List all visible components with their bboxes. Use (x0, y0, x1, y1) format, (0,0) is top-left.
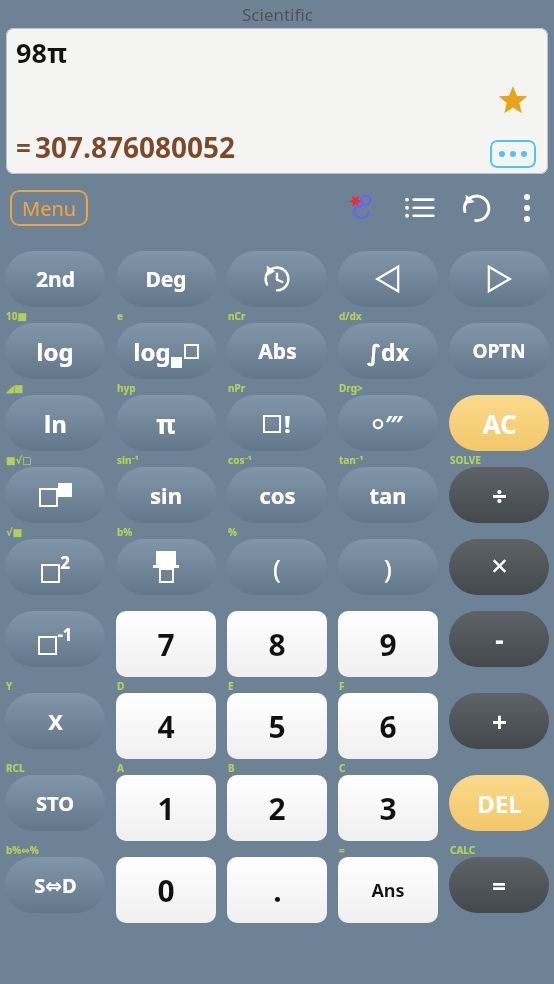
button[interactable]: Favourite (496, 84, 530, 118)
button[interactable]: STO (5, 775, 105, 831)
staticText: 307.876080052 (35, 128, 236, 166)
button[interactable]: Search constants (332, 185, 390, 231)
button[interactable]: X (5, 693, 105, 749)
button[interactable]: Minus (449, 611, 549, 667)
button[interactable]: 98π (6, 28, 548, 174)
staticText: 2nd (36, 265, 75, 294)
button[interactable]: 1 (116, 775, 216, 841)
staticText: 98π (16, 34, 67, 71)
staticText: -1 (57, 623, 73, 646)
button[interactable]: Divide (449, 467, 549, 523)
button[interactable]: 3 (338, 775, 438, 841)
button[interactable]: OPTN (449, 323, 549, 379)
staticText: - (495, 622, 504, 657)
staticText: Menu (22, 195, 77, 222)
staticText: F (339, 679, 345, 693)
button[interactable]: log (116, 323, 216, 379)
button[interactable]: ! (227, 395, 327, 451)
button[interactable]: 0 (116, 857, 216, 923)
button[interactable]: Plus (449, 693, 549, 749)
staticText: sin (150, 480, 182, 510)
staticText: hyp (117, 381, 136, 395)
staticText: . (273, 870, 282, 911)
button[interactable]: Left (338, 251, 438, 307)
button[interactable]: Fraction (116, 539, 216, 595)
staticText: Ans (371, 878, 405, 903)
staticText: Y (6, 679, 13, 693)
button[interactable]: More (506, 185, 548, 231)
button[interactable]: 5 (227, 693, 327, 759)
button[interactable]: Menu (10, 190, 88, 226)
staticText: B (228, 761, 235, 775)
staticText: D (117, 679, 125, 693)
button[interactable]: Right (449, 251, 549, 307)
button[interactable]: Abs (227, 323, 327, 379)
staticText: log (36, 335, 74, 368)
button[interactable]: 4 (116, 693, 216, 759)
staticText: + (492, 704, 507, 739)
button[interactable]: Ans (338, 857, 438, 923)
staticText: A (117, 761, 124, 775)
button[interactable]: Multiply (449, 539, 549, 595)
staticText: ! (284, 407, 291, 440)
staticText: 6 (379, 706, 397, 747)
staticText: sin⁻¹ (117, 453, 139, 467)
staticText: % (228, 525, 238, 539)
staticText: = (16, 130, 31, 165)
staticText: log (133, 335, 171, 368)
button[interactable]: -1 (5, 611, 105, 667)
button[interactable]: 8 (227, 611, 327, 677)
staticText: b%⇔% (6, 843, 39, 857)
button[interactable]: ( (227, 539, 327, 595)
button[interactable]: ‴ (338, 395, 438, 451)
staticText: ∫dx (367, 336, 409, 367)
staticText: X (48, 706, 63, 736)
button[interactable]: cos (227, 467, 327, 523)
button[interactable]: History (227, 251, 327, 307)
staticText: √■ (6, 527, 23, 539)
button[interactable]: ln (5, 395, 105, 451)
button[interactable]: History list (390, 185, 448, 231)
staticText: cos⁻¹ (228, 453, 252, 467)
staticText: Deg (145, 265, 187, 294)
staticText: ‴ (385, 407, 403, 440)
button[interactable]: tan (338, 467, 438, 523)
staticText: S⇔D (34, 872, 77, 899)
staticText: ) (384, 550, 392, 585)
button[interactable]: AC (449, 395, 549, 451)
button[interactable]: S⇔D (5, 857, 105, 913)
staticText: 1 (157, 788, 175, 829)
staticText: C (339, 761, 346, 775)
staticText: Drg> (339, 381, 363, 395)
staticText: E (228, 679, 234, 693)
button[interactable]: 2 (5, 539, 105, 595)
button[interactable]: π (116, 395, 216, 451)
staticText: CALC (450, 843, 476, 857)
button[interactable]: Deg (116, 251, 216, 307)
button[interactable]: sin (116, 467, 216, 523)
staticText: ■√□ (6, 455, 32, 467)
button[interactable]: Undo (448, 185, 506, 231)
staticText: ÷ (492, 478, 507, 513)
staticText: AC (482, 406, 517, 441)
button[interactable]: ) (338, 539, 438, 595)
staticText: 10■ (6, 309, 27, 323)
button[interactable]: 6 (338, 693, 438, 759)
button[interactable]: DEL (449, 775, 549, 831)
button[interactable]: . (227, 857, 327, 923)
staticText: ◢■ (6, 383, 24, 395)
button[interactable]: 2 (227, 775, 327, 841)
button[interactable]: log (5, 323, 105, 379)
button[interactable]: 7 (116, 611, 216, 677)
staticText: OPTN (472, 338, 526, 364)
button[interactable]: ∫dx (338, 323, 438, 379)
button[interactable]: Equals (449, 857, 549, 913)
staticText: 2 (268, 788, 286, 829)
staticText: tan⁻¹ (339, 453, 364, 467)
button[interactable] (5, 467, 105, 523)
staticText: Scientific (242, 3, 313, 26)
button[interactable]: More options (490, 140, 536, 168)
button[interactable]: 9 (338, 611, 438, 677)
staticText: cos (259, 480, 296, 510)
button[interactable]: 2nd (5, 251, 105, 307)
